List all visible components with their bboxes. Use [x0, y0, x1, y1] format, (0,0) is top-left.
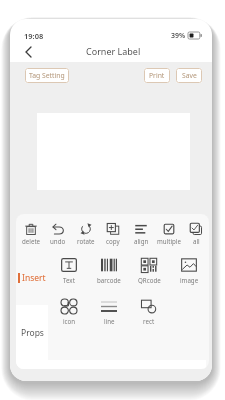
- staticText: rotate: [77, 237, 95, 245]
- staticText: multiple: [157, 237, 181, 245]
- button[interactable]: rotate: [72, 217, 100, 247]
- button[interactable]: Save: [176, 68, 202, 83]
- staticText: Text: [63, 276, 75, 284]
- staticText: copy: [106, 237, 120, 245]
- button[interactable]: Insert: [16, 250, 48, 305]
- button[interactable]: multiple: [155, 217, 183, 247]
- staticText: 19:08: [24, 31, 44, 41]
- staticText: Props: [21, 327, 44, 339]
- staticText: QRcode: [138, 276, 161, 284]
- button[interactable]: Props: [16, 305, 48, 360]
- button[interactable]: icon: [55, 293, 83, 327]
- staticText: barcode: [97, 276, 121, 284]
- staticText: undo: [50, 237, 66, 245]
- button[interactable]: delete: [17, 217, 45, 247]
- staticText: Save: [182, 71, 197, 80]
- staticText: delete: [22, 237, 41, 245]
- staticText: all: [193, 237, 200, 245]
- staticText: Insert: [22, 272, 46, 284]
- button[interactable]: copy: [99, 217, 127, 247]
- button[interactable]: Back: [19, 43, 37, 61]
- staticText: 39%: [171, 31, 186, 41]
- staticText: icon: [63, 317, 76, 325]
- button[interactable]: image: [175, 252, 203, 286]
- staticText: Print: [149, 71, 165, 80]
- button[interactable]: line: [95, 293, 123, 327]
- staticText: Corner Label: [86, 45, 141, 57]
- button[interactable]: all: [182, 217, 210, 247]
- button[interactable]: QRcode: [135, 252, 163, 286]
- staticText: line: [104, 317, 115, 325]
- staticText: image: [180, 276, 199, 284]
- button[interactable]: barcode: [95, 252, 123, 286]
- button[interactable]: undo: [44, 217, 72, 247]
- button[interactable]: Print: [144, 68, 170, 83]
- staticText: rect: [143, 317, 155, 325]
- button[interactable]: rect: [135, 293, 163, 327]
- button[interactable]: Tag Setting: [25, 68, 69, 83]
- button[interactable]: align: [127, 217, 155, 247]
- button[interactable]: Text: [55, 252, 83, 286]
- staticText: align: [134, 237, 149, 245]
- staticText: Tag Setting: [29, 71, 65, 80]
